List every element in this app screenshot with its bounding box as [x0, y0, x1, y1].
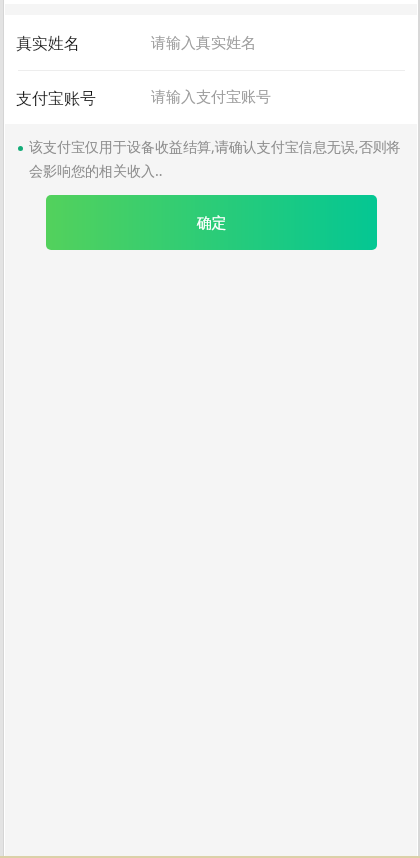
- staticText: 该支付宝仅用于设备收益结算,请确认支付宝信息无误,否则将会影响您的相关收入..: [29, 134, 406, 182]
- staticText: 确定: [197, 214, 227, 233]
- staticText: 支付宝账号: [16, 89, 96, 109]
- staticText: 请输入真实姓名: [151, 34, 256, 53]
- staticText: 请输入支付宝账号: [151, 88, 271, 107]
- button[interactable]: 确定: [46, 195, 377, 250]
- button[interactable]: 支付宝账号: [5, 71, 417, 124]
- staticText: 真实姓名: [16, 34, 80, 54]
- button[interactable]: 真实姓名: [5, 15, 417, 71]
